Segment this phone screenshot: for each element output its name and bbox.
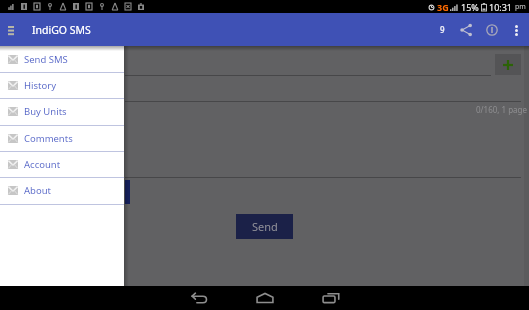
button[interactable]: More options [506, 20, 526, 40]
staticText: Send SMS [24, 53, 68, 66]
button[interactable]: Account [0, 151, 124, 177]
staticText: 15% [461, 1, 479, 13]
button[interactable]: Send [236, 214, 293, 239]
staticText: About [24, 184, 51, 197]
button[interactable]: Comments [0, 125, 124, 151]
button[interactable]: Share [456, 20, 476, 40]
button[interactable]: Back [186, 288, 212, 308]
staticText: 3G [437, 1, 449, 13]
staticText: pm [515, 2, 526, 12]
button[interactable]: Send SMS [0, 46, 124, 72]
button[interactable]: Open navigation drawer [2, 19, 20, 41]
staticText: 9 [440, 24, 445, 35]
button[interactable]: Buy Units [0, 98, 124, 124]
button[interactable]: Recent apps [318, 288, 344, 308]
button[interactable]: About [0, 177, 124, 203]
button[interactable]: Add recipient [495, 54, 521, 75]
staticText: Comments [24, 132, 73, 145]
button[interactable]: History [0, 72, 124, 98]
staticText: Send [252, 219, 278, 234]
staticText: Buy Units [24, 105, 67, 118]
button[interactable]: Home [252, 288, 278, 308]
staticText: 10:31 [489, 1, 513, 13]
button[interactable]: Info [482, 20, 502, 40]
staticText: Account [24, 158, 61, 171]
staticText: 0/160, 1 page [476, 104, 527, 115]
staticText: History [24, 79, 56, 92]
staticText: IndiGO SMS [32, 23, 91, 37]
